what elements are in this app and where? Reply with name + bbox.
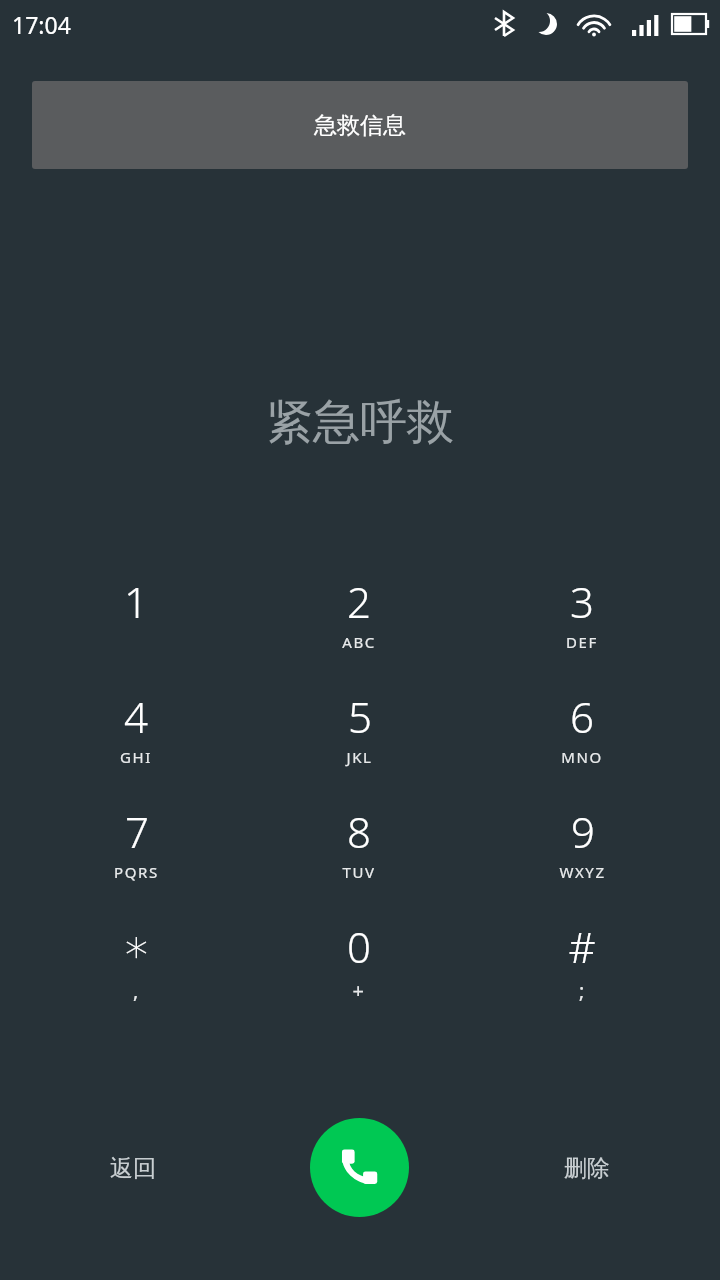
button[interactable]: 8 — [285, 800, 433, 908]
staticText: + — [352, 977, 366, 1004]
staticText: JKL — [346, 747, 373, 767]
button[interactable]: 删除 — [512, 1130, 662, 1206]
button[interactable]: 6 — [508, 685, 656, 793]
button[interactable]: 1 — [62, 570, 210, 678]
staticText: 删除 — [564, 1154, 610, 1183]
button[interactable]: 0 — [285, 915, 433, 1023]
staticText: # — [568, 918, 596, 975]
button[interactable]: 9 — [508, 800, 656, 908]
staticText: 0 — [347, 918, 371, 975]
button[interactable]: Call — [310, 1118, 409, 1217]
button[interactable]: 急救信息 — [32, 81, 688, 169]
staticText: 急救信息 — [314, 111, 406, 140]
staticText: 4 — [124, 688, 148, 745]
staticText: 9 — [571, 803, 595, 860]
staticText: DEF — [566, 632, 598, 652]
staticText: MNO — [561, 747, 603, 767]
button[interactable]: 5 — [285, 685, 433, 793]
staticText: 7 — [125, 803, 149, 860]
staticText: 返回 — [110, 1154, 156, 1183]
staticText: 5 — [348, 688, 372, 745]
staticText: 17:04 — [12, 9, 71, 40]
staticText: 2 — [347, 573, 371, 630]
button[interactable]: 2 — [285, 570, 433, 678]
button[interactable]: 返回 — [58, 1130, 208, 1206]
button[interactable]: 4 — [62, 685, 210, 793]
button[interactable]: 7 — [62, 800, 210, 908]
staticText: 1 — [124, 573, 148, 630]
button[interactable]: ∗ — [62, 915, 210, 1023]
staticText: GHI — [120, 747, 152, 767]
staticText: 8 — [347, 803, 371, 860]
staticText: 3 — [570, 573, 594, 630]
staticText: ∗ — [122, 919, 151, 973]
staticText: PQRS — [114, 862, 159, 882]
staticText: TUV — [342, 862, 376, 882]
staticText: WXYZ — [559, 862, 606, 882]
staticText: ; — [579, 977, 586, 1004]
button[interactable]: # — [508, 915, 656, 1023]
staticText: ABC — [342, 632, 376, 652]
staticText: 6 — [570, 688, 594, 745]
staticText: , — [133, 977, 140, 1004]
staticText: 紧急呼救 — [266, 393, 454, 452]
button[interactable]: 3 — [508, 570, 656, 678]
